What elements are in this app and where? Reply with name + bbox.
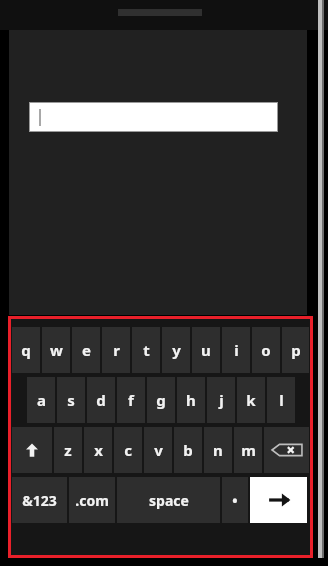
staticText: s <box>67 390 75 410</box>
button[interactable]: p <box>282 327 309 373</box>
staticText: space <box>149 491 189 510</box>
staticText: g <box>156 390 166 410</box>
staticText: p <box>291 340 301 360</box>
button[interactable]: o <box>252 327 280 373</box>
staticText: f <box>128 390 134 410</box>
staticText: t <box>143 340 150 360</box>
staticText: u <box>201 340 211 360</box>
staticText: z <box>64 440 72 460</box>
button[interactable]: h <box>177 377 205 423</box>
button[interactable]: • <box>222 477 248 523</box>
button[interactable]: l <box>267 377 295 423</box>
staticText: • <box>232 491 238 510</box>
button[interactable] <box>29 102 278 132</box>
staticText: .com <box>75 491 109 510</box>
button[interactable]: k <box>237 377 265 423</box>
button[interactable]: y <box>162 327 190 373</box>
staticText: o <box>261 340 271 360</box>
staticText: c <box>124 440 132 460</box>
button[interactable]: m <box>234 427 262 473</box>
button[interactable]: t <box>132 327 160 373</box>
button[interactable]: c <box>114 427 142 473</box>
button[interactable]: j <box>207 377 235 423</box>
button[interactable]: i <box>222 327 250 373</box>
staticText: &123 <box>22 491 57 510</box>
button[interactable]: .com <box>69 477 115 523</box>
staticText: d <box>96 390 106 410</box>
button[interactable]: Shift <box>12 427 52 473</box>
button[interactable]: &123 <box>12 477 67 523</box>
staticText: y <box>172 340 181 360</box>
button[interactable]: q <box>12 327 40 373</box>
staticText: r <box>113 340 120 360</box>
button[interactable]: d <box>87 377 115 423</box>
staticText: h <box>186 390 196 410</box>
staticText: w <box>50 340 63 360</box>
button[interactable]: Enter <box>250 477 307 523</box>
staticText: i <box>234 340 239 360</box>
button[interactable]: f <box>117 377 145 423</box>
button[interactable]: b <box>174 427 202 473</box>
staticText: m <box>241 440 256 460</box>
button[interactable]: v <box>144 427 172 473</box>
staticText: q <box>21 340 31 360</box>
button[interactable]: w <box>42 327 70 373</box>
staticText: l <box>279 390 284 410</box>
button[interactable]: n <box>204 427 232 473</box>
staticText: n <box>213 440 223 460</box>
staticText: k <box>246 390 256 410</box>
button[interactable]: s <box>57 377 85 423</box>
button[interactable]: space <box>117 477 220 523</box>
button[interactable]: r <box>102 327 130 373</box>
staticText: e <box>82 340 91 360</box>
staticText: x <box>94 440 103 460</box>
button[interactable]: u <box>192 327 220 373</box>
button[interactable]: a <box>27 377 55 423</box>
button[interactable]: z <box>54 427 82 473</box>
staticText: a <box>37 390 46 410</box>
button[interactable]: g <box>147 377 175 423</box>
button[interactable]: e <box>72 327 100 373</box>
staticText: v <box>154 440 163 460</box>
staticText: j <box>219 390 224 410</box>
staticText: b <box>183 440 193 460</box>
button[interactable]: Backspace <box>264 427 309 473</box>
button[interactable]: x <box>84 427 112 473</box>
